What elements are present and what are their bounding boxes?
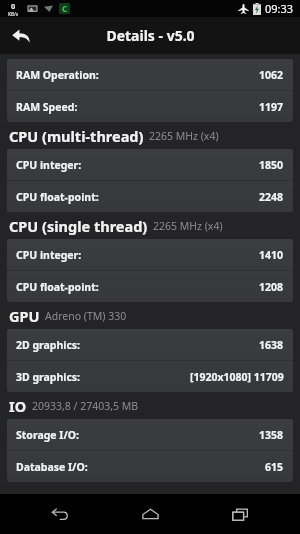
button[interactable]: Storage I/O:	[7, 419, 293, 450]
staticText: Adreno (TM) 330	[45, 309, 127, 323]
button[interactable]: Recent apps	[210, 494, 270, 534]
staticText: CPU integer:	[16, 248, 82, 262]
button[interactable]: 2D graphics:	[7, 329, 293, 360]
button[interactable]: RAM Speed:	[7, 91, 293, 122]
staticText: 615	[265, 460, 284, 474]
staticText: GPU	[9, 306, 40, 326]
staticText: RAM Operation:	[16, 68, 99, 82]
staticText: KB/s	[8, 11, 19, 17]
staticText: 3D graphics:	[16, 370, 81, 384]
button[interactable]: Database I/O:	[7, 451, 293, 482]
staticText: 20933,8 / 27403,5 MB	[32, 399, 139, 413]
button[interactable]: Home	[120, 494, 180, 534]
button[interactable]: CPU integer:	[7, 149, 293, 180]
button[interactable]: CPU float-point:	[7, 271, 293, 302]
button[interactable]: RAM Operation:	[7, 59, 293, 90]
staticText: CPU (single thread)	[9, 216, 148, 236]
staticText: 1638	[259, 338, 284, 352]
staticText: 09:33	[265, 1, 294, 16]
staticText: 1208	[259, 280, 284, 294]
button[interactable]: Back	[30, 494, 90, 534]
staticText: 1197	[259, 100, 284, 114]
staticText: 2265 MHz (x4)	[153, 219, 223, 233]
staticText: 1062	[259, 68, 284, 82]
button[interactable]: Back	[0, 17, 42, 54]
staticText: 2265 MHz (x4)	[149, 129, 219, 143]
staticText: CPU integer:	[16, 158, 82, 172]
staticText: C	[62, 3, 68, 14]
staticText: RAM Speed:	[16, 100, 78, 114]
button[interactable]: CPU integer:	[7, 239, 293, 270]
staticText: CPU float-point:	[16, 190, 99, 204]
staticText: Storage I/O:	[16, 428, 80, 442]
staticText: 1358	[259, 428, 284, 442]
staticText: 2248	[259, 190, 284, 204]
staticText: CPU float-point:	[16, 280, 99, 294]
staticText: Details - v5.0	[106, 26, 195, 45]
staticText: 0	[11, 1, 16, 11]
staticText: CPU (multi-thread)	[9, 126, 144, 146]
staticText: 1850	[259, 158, 284, 172]
staticText: 2D graphics:	[16, 338, 81, 352]
staticText: 1410	[259, 248, 284, 262]
button[interactable]: CPU float-point:	[7, 181, 293, 212]
staticText: Database I/O:	[16, 460, 88, 474]
button[interactable]: 3D graphics:	[7, 361, 293, 392]
staticText: IO	[9, 396, 27, 416]
staticText: [1920x1080] 11709	[190, 370, 284, 384]
